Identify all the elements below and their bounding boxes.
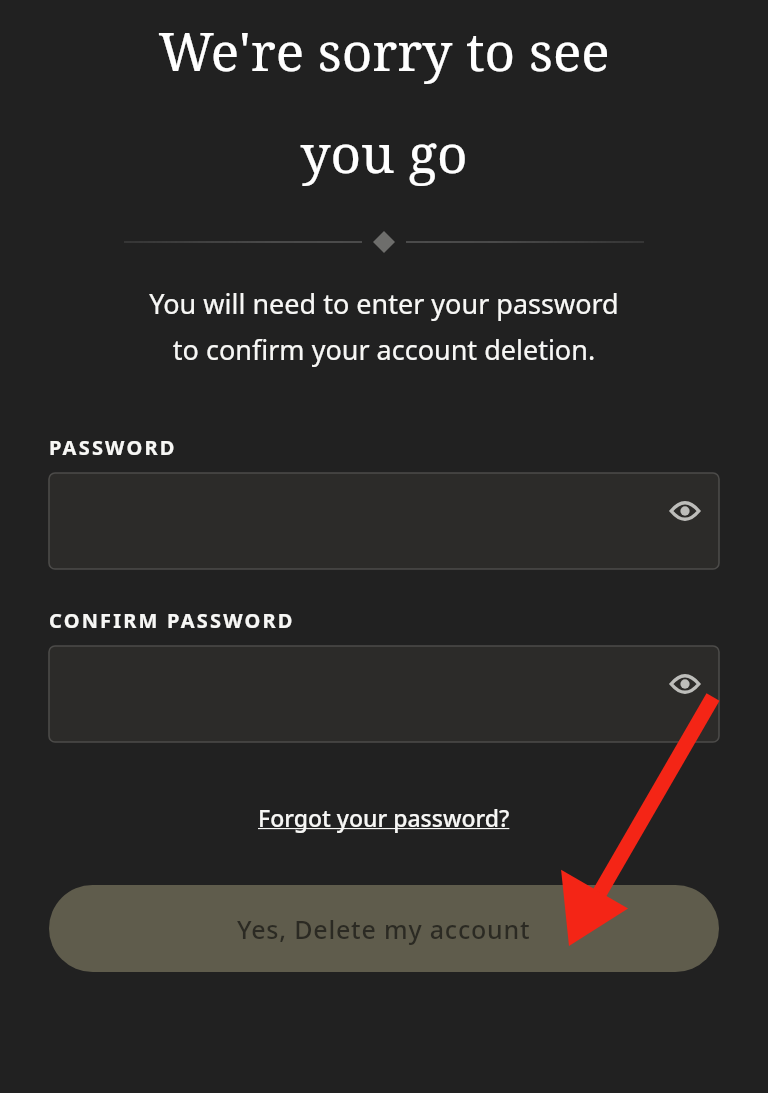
staticText: You will need to enter your password to … bbox=[28, 285, 740, 368]
button[interactable]: Forgot your password? bbox=[252, 798, 516, 837]
button[interactable]: Show password bbox=[663, 489, 707, 533]
staticText: CONFIRM PASSWORD bbox=[49, 607, 295, 634]
staticText: We're sorry to see you go bbox=[40, 14, 728, 189]
button[interactable]: Yes, Delete my account bbox=[49, 885, 719, 972]
staticText: Forgot your password? bbox=[258, 802, 510, 833]
button[interactable]: Show confirm password bbox=[663, 662, 707, 706]
staticText: PASSWORD bbox=[49, 434, 177, 461]
staticText: Yes, Delete my account bbox=[237, 912, 531, 946]
